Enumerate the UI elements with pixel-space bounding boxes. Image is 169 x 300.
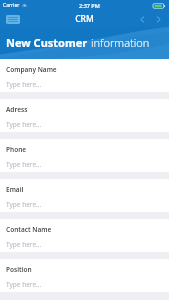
button[interactable]: Position [0,259,169,292]
button[interactable]: Menu [4,14,21,25]
staticText: Type here... [6,280,42,289]
staticText: Company Name [6,65,57,74]
button[interactable]: Company Name [0,59,169,92]
button[interactable]: Contact Name [0,219,169,252]
staticText: Type here... [6,240,42,249]
staticText: Type here... [6,200,42,209]
staticText: Phone [6,145,27,154]
staticText: Contact Name [6,225,52,234]
staticText: CRM [75,13,94,25]
staticText: Type here... [6,120,42,129]
button[interactable]: Previous [135,12,149,26]
button[interactable]: Phone [0,139,169,172]
staticText: Carrier [3,2,20,9]
button[interactable]: Next [151,12,165,26]
staticText: Type here... [6,160,42,169]
staticText: Email [6,185,24,194]
staticText: information [91,35,150,50]
staticText: New Customer [6,35,88,50]
staticText: Adress [6,105,28,114]
button[interactable]: Adress [0,99,169,132]
staticText: Position [6,265,32,274]
staticText: 2:37 PM [79,2,100,9]
button[interactable]: Email [0,179,169,212]
staticText: Type here... [6,80,42,89]
